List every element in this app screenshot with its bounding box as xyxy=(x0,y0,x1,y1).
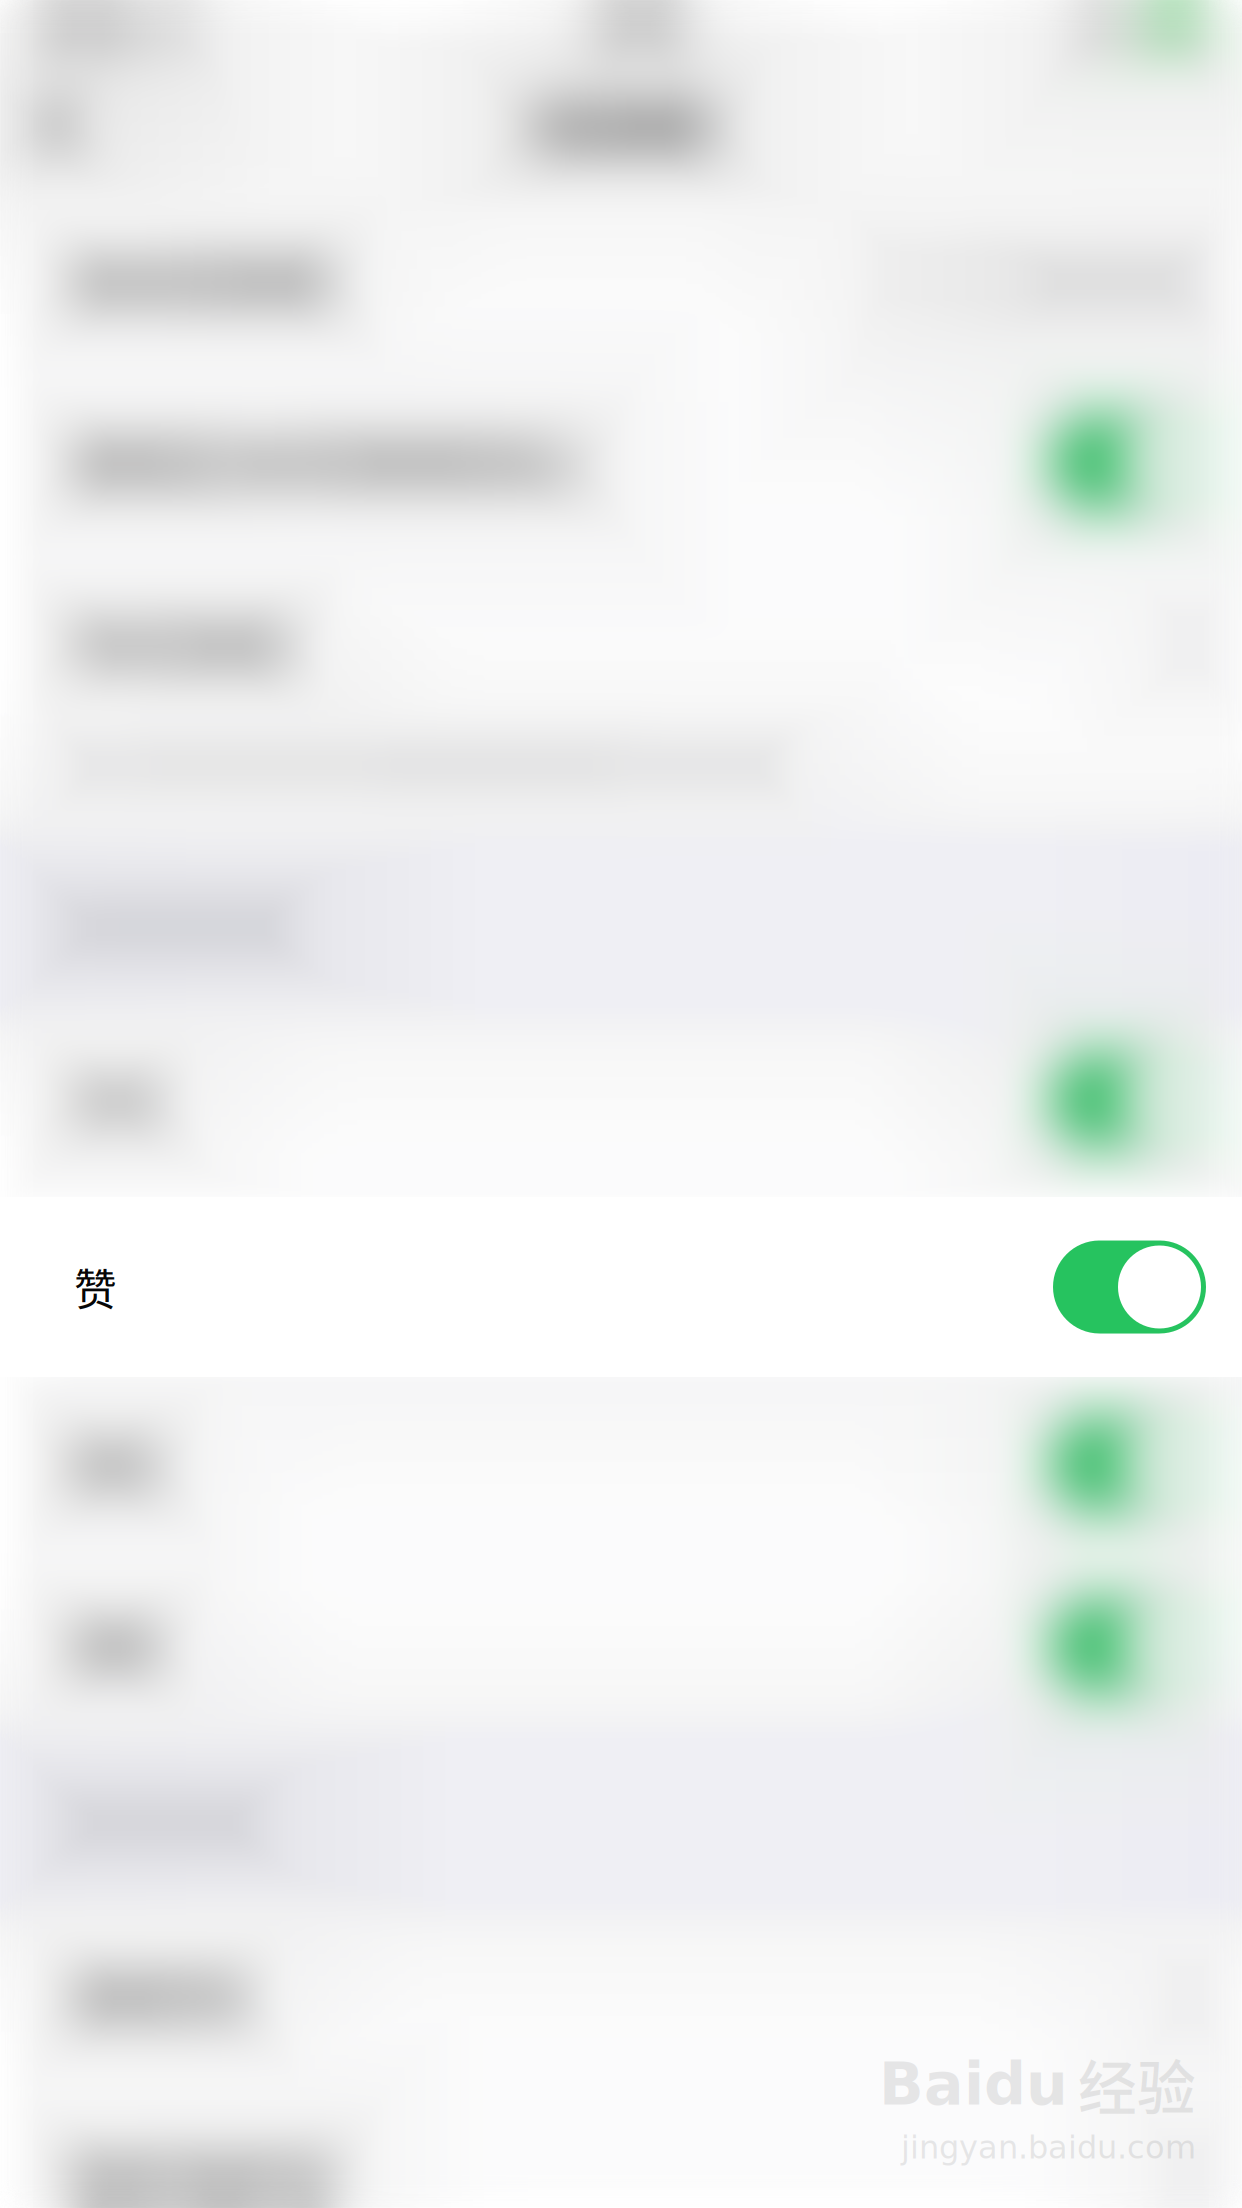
button[interactable]: 通知显示消息详情和发送人 xyxy=(0,372,1242,552)
staticText: 更新 xyxy=(74,1615,160,1677)
button[interactable]: 返回 xyxy=(0,65,115,185)
staticText: 通知显示消息详情和发送人 xyxy=(74,431,590,493)
staticText: Baidu xyxy=(879,2050,1068,2118)
staticText: 中国移动 xyxy=(30,10,142,50)
staticText: jingyan.baidu.com xyxy=(901,2129,1196,2166)
button[interactable]: 赞 xyxy=(0,1192,1242,1372)
staticText: Baidu xyxy=(879,234,1068,303)
staticText: 赞 xyxy=(74,1251,117,1313)
staticText: 评论 xyxy=(74,1069,160,1131)
staticText: 84% xyxy=(1079,14,1138,45)
staticText: 16:05 xyxy=(594,14,681,46)
staticText: 消息通知 xyxy=(531,92,711,158)
button[interactable]: 通知声音 xyxy=(0,1906,1242,2086)
staticText: 接收消息通知 xyxy=(74,249,332,311)
staticText: 声音与振动 xyxy=(74,613,289,675)
staticText: 赞 xyxy=(74,1256,117,1318)
staticText: 振动与提示音 xyxy=(74,2145,332,2207)
button[interactable]: 接收消息通知 xyxy=(0,190,1242,370)
button[interactable]: 振动与提示音 xyxy=(0,2088,1242,2208)
staticText: 经验 xyxy=(1078,226,1196,311)
button[interactable]: 提及 xyxy=(0,1374,1242,1554)
staticText: 4G xyxy=(142,14,196,45)
staticText: 通知声音 xyxy=(74,1965,246,2027)
staticText: 提及 xyxy=(74,1433,160,1495)
button[interactable]: 声音与振动 xyxy=(0,554,1242,734)
button[interactable]: 评论 xyxy=(0,1010,1242,1190)
staticText: 经验 xyxy=(1078,2042,1196,2127)
button[interactable]: 赞 xyxy=(0,1197,1242,1377)
button[interactable]: 更新 xyxy=(0,1556,1242,1736)
